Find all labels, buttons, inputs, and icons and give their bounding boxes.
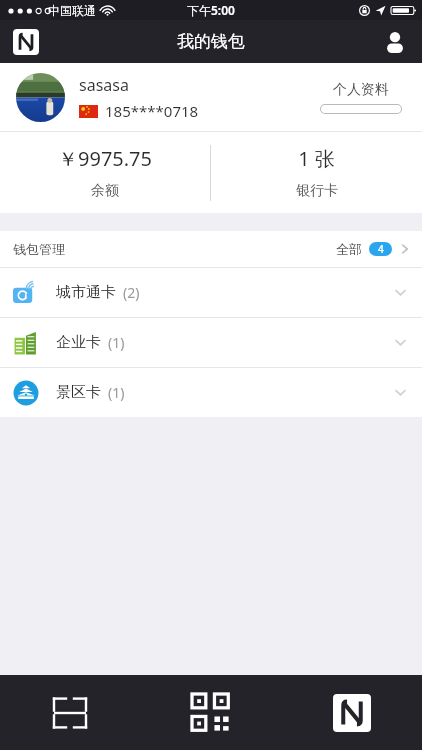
- button[interactable]: Scan: [0, 675, 140, 750]
- staticText: (1): [108, 383, 125, 402]
- staticText: 个人资料: [333, 81, 389, 99]
- staticText: 余额: [91, 182, 119, 200]
- button[interactable]: 景区卡: [0, 368, 422, 417]
- staticText: 185****0718: [105, 101, 199, 121]
- staticText: 中国联通: [48, 3, 96, 18]
- button[interactable]: 个人资料: [316, 77, 406, 118]
- button[interactable]: 1 张: [211, 132, 422, 213]
- staticText: 下午5:00: [187, 2, 235, 18]
- button[interactable]: QR code: [140, 675, 281, 750]
- staticText: ￥9975.75: [58, 145, 152, 172]
- staticText: 景区卡: [56, 383, 101, 402]
- staticText: (2): [123, 283, 140, 302]
- staticText: 我的钱包: [177, 31, 245, 52]
- button[interactable]: NFC: [13, 29, 39, 55]
- staticText: 全部: [336, 241, 362, 257]
- button[interactable]: 城市通卡: [0, 268, 422, 317]
- button[interactable]: Account: [380, 27, 410, 57]
- button[interactable]: 钱包管理: [0, 231, 422, 267]
- staticText: 1 张: [298, 145, 335, 172]
- button[interactable]: sasasa: [0, 63, 422, 131]
- button[interactable]: ￥9975.75: [0, 132, 210, 213]
- staticText: 企业卡: [56, 333, 101, 352]
- staticText: sasasa: [79, 74, 129, 96]
- staticText: (1): [108, 333, 125, 352]
- staticText: 钱包管理: [13, 241, 65, 257]
- button[interactable]: 企业卡: [0, 318, 422, 367]
- staticText: 4: [378, 242, 384, 256]
- staticText: 城市通卡: [56, 283, 116, 302]
- button[interactable]: NFC: [281, 675, 422, 750]
- staticText: 银行卡: [296, 182, 338, 200]
